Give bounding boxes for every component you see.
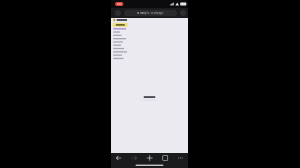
button[interactable]: Link <box>113 35 122 36</box>
staticText: example.com/page <box>140 11 164 15</box>
button[interactable]: Address bar <box>124 10 177 16</box>
button[interactable]: Link <box>113 58 124 59</box>
button[interactable]: Link <box>113 45 121 46</box>
button[interactable]: Tabs <box>157 153 173 163</box>
button[interactable]: Forward <box>126 153 142 163</box>
button[interactable]: Link <box>113 38 126 39</box>
button[interactable]: Link <box>113 31 120 33</box>
button[interactable]: Link <box>113 51 127 52</box>
button[interactable]: Reload <box>180 8 186 18</box>
button[interactable]: New tab <box>142 153 157 163</box>
button[interactable]: Account <box>115 8 121 18</box>
button[interactable]: Menu <box>173 153 188 163</box>
button[interactable]: Back <box>111 153 126 163</box>
button[interactable]: Link <box>113 41 123 43</box>
button[interactable]: Link <box>113 54 122 56</box>
button[interactable]: Link <box>113 48 124 49</box>
